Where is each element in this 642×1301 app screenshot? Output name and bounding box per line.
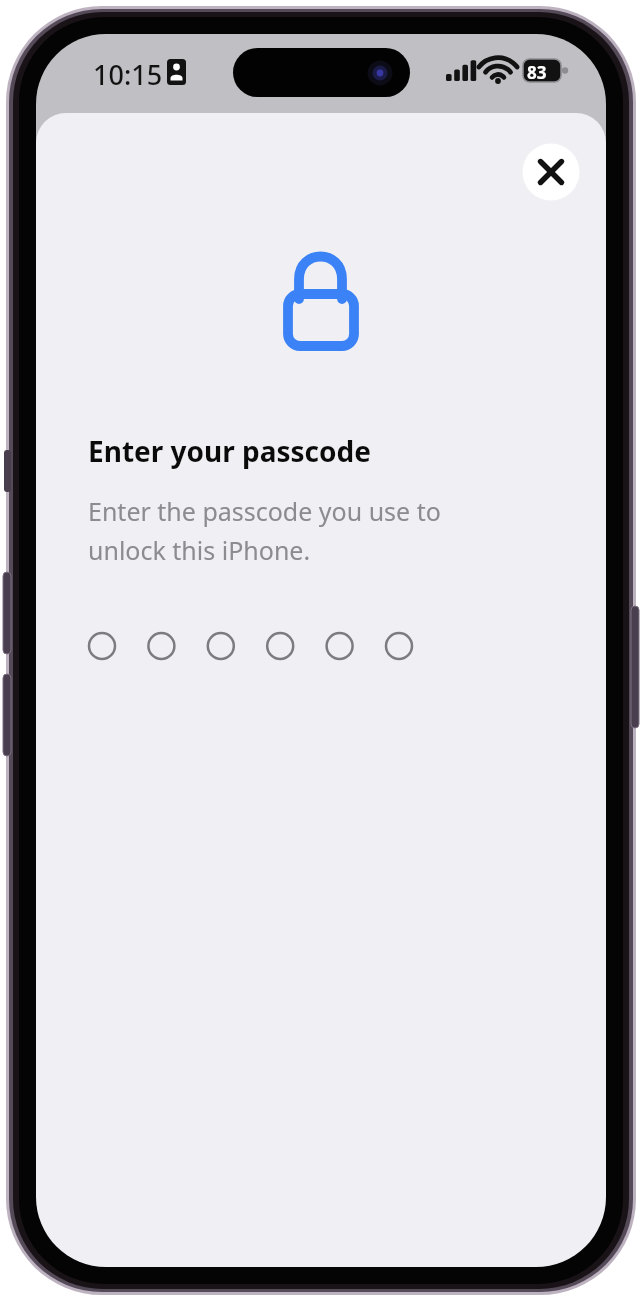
staticText: 83	[527, 61, 547, 84]
button[interactable]: Passcode entry	[80, 620, 425, 672]
button[interactable]: Close	[522, 143, 580, 201]
staticText: Enter the passcode you use to unlock thi…	[88, 494, 441, 568]
staticText: Enter your passcode	[88, 432, 371, 470]
staticText: 10:15	[93, 56, 163, 93]
